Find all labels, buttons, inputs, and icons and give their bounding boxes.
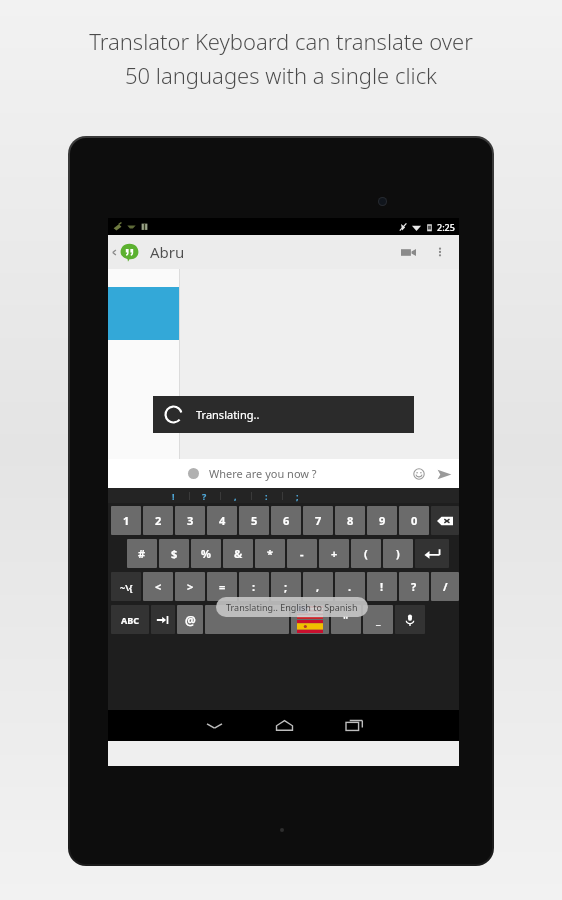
button[interactable]: 9 (367, 506, 397, 535)
button[interactable]: > (175, 572, 205, 601)
button[interactable]: ? (189, 488, 220, 503)
staticText: _ (376, 612, 381, 627)
staticText: + (331, 546, 338, 561)
staticText: 5 (251, 513, 258, 528)
staticText: < (155, 579, 162, 594)
staticText: % (201, 546, 211, 561)
button[interactable]: 2 (143, 506, 173, 535)
button[interactable]: Insert emoji (407, 462, 431, 486)
staticText: ! (172, 490, 175, 502)
button[interactable]: Tab (151, 605, 175, 634)
staticText: 50 languages with a single click (125, 60, 437, 90)
staticText: ) (396, 546, 400, 561)
staticText: , (234, 490, 237, 502)
button[interactable]: 8 (335, 506, 365, 535)
staticText: . (348, 579, 352, 594)
button[interactable]: , (220, 488, 251, 503)
button[interactable]: . (335, 572, 365, 601)
staticText: - (300, 546, 304, 561)
button[interactable]: $ (159, 539, 189, 568)
button[interactable]: ? (399, 572, 429, 601)
staticText: ABC (121, 614, 139, 626)
button[interactable]: Hide keyboard (179, 710, 249, 741)
button[interactable]: More options (425, 237, 455, 267)
staticText: ! (380, 579, 384, 594)
staticText: * (267, 546, 273, 561)
button[interactable]: Send message (431, 461, 457, 487)
button[interactable]: _ (363, 605, 393, 634)
staticText: " (343, 612, 349, 627)
staticText: Abru (150, 242, 185, 262)
button[interactable]: 3 (175, 506, 205, 535)
staticText: 4 (219, 513, 226, 528)
staticText: Where are you now ? (209, 466, 317, 481)
button[interactable]: ; (271, 572, 301, 601)
button[interactable]: Voice input (395, 605, 425, 634)
staticText: @ (185, 612, 196, 628)
button[interactable]: Recent apps (319, 710, 389, 741)
button[interactable]: , (303, 572, 333, 601)
button[interactable]: 0 (399, 506, 429, 535)
button[interactable]: ) (383, 539, 413, 568)
staticText: : (265, 490, 268, 502)
staticText: 7 (315, 513, 322, 528)
staticText: ? (202, 490, 207, 502)
button[interactable]: Backspace (431, 506, 459, 535)
staticText: 1 (123, 513, 130, 528)
staticText: : (252, 579, 256, 594)
button[interactable]: 7 (303, 506, 333, 535)
staticText: Translator Keyboard can translate over (89, 26, 473, 56)
button[interactable]: + (319, 539, 349, 568)
button[interactable]: % (191, 539, 221, 568)
staticText: > (187, 579, 194, 594)
button[interactable]: 6 (271, 506, 301, 535)
button[interactable]: Where are you now ? (108, 459, 459, 488)
button[interactable]: & (223, 539, 253, 568)
button[interactable]: 4 (207, 506, 237, 535)
button[interactable]: ( (351, 539, 381, 568)
staticText: 8 (347, 513, 354, 528)
button[interactable]: ~\{ (111, 572, 141, 601)
staticText: 6 (283, 513, 290, 528)
button[interactable]: Home (249, 710, 319, 741)
staticText: Translating.. English to Spanish (226, 601, 358, 613)
button[interactable]: ; (282, 488, 313, 503)
staticText: # (138, 546, 146, 561)
button[interactable]: : (251, 488, 282, 503)
button[interactable]: Switch language English to Spanish (291, 605, 329, 634)
button[interactable]: ABC (111, 605, 149, 634)
staticText: Translating.. (196, 407, 260, 422)
button[interactable]: # (127, 539, 157, 568)
button[interactable]: < (143, 572, 173, 601)
staticText: $ (171, 546, 178, 561)
button[interactable]: * (255, 539, 285, 568)
button[interactable]: ! (367, 572, 397, 601)
button[interactable]: : (239, 572, 269, 601)
staticText: ; (284, 579, 288, 594)
button[interactable]: / (431, 572, 459, 601)
button[interactable] (205, 605, 289, 634)
staticText: ; (296, 490, 299, 502)
staticText: ~\{ (120, 581, 133, 593)
staticText: 2:25 (437, 221, 455, 233)
button[interactable]: = (207, 572, 237, 601)
staticText: 9 (379, 513, 386, 528)
button[interactable]: - (287, 539, 317, 568)
button[interactable]: Enter (415, 539, 449, 568)
button[interactable]: Video call (391, 235, 425, 269)
staticText (246, 612, 249, 627)
staticText: , (316, 579, 320, 594)
button[interactable]: " (331, 605, 361, 634)
button[interactable]: Back to Hangouts (108, 243, 141, 262)
button[interactable]: @ (177, 605, 203, 634)
button[interactable]: 1 (111, 506, 141, 535)
staticText: / (443, 579, 448, 594)
button[interactable]: 5 (239, 506, 269, 535)
staticText: = (219, 579, 226, 594)
staticText: & (234, 546, 243, 561)
staticText: ( (364, 546, 368, 561)
button[interactable]: ! (158, 488, 189, 503)
staticText: 2 (155, 513, 162, 528)
staticText: 0 (411, 513, 418, 528)
